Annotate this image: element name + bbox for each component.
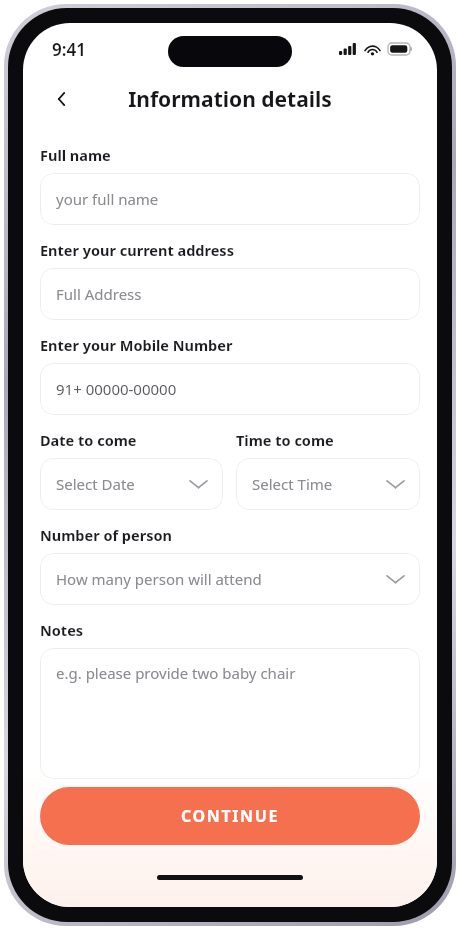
button[interactable]: CONTINUE — [40, 787, 420, 845]
staticText: Full name — [40, 145, 111, 165]
staticText: 91+ 00000-00000 — [56, 379, 404, 399]
button[interactable]: How many person will attend — [40, 553, 420, 605]
button[interactable]: Back — [40, 77, 84, 121]
staticText: Select Date — [56, 474, 190, 494]
button[interactable]: Select Date — [40, 458, 223, 510]
staticText: Enter your Mobile Number — [40, 335, 233, 355]
button[interactable]: e.g. please provide two baby chair — [40, 648, 420, 779]
staticText: 9:41 — [52, 38, 86, 61]
staticText: your full name — [56, 189, 404, 209]
button[interactable]: your full name — [40, 173, 420, 225]
staticText: Time to come — [236, 430, 334, 450]
staticText: Date to come — [40, 430, 137, 450]
button[interactable]: 91+ 00000-00000 — [40, 363, 420, 415]
staticText: Notes — [40, 620, 84, 640]
button[interactable]: Full Address — [40, 268, 420, 320]
staticText: Select Time — [252, 474, 387, 494]
staticText: CONTINUE — [181, 805, 279, 827]
staticText: How many person will attend — [56, 569, 387, 589]
staticText: Information details — [128, 85, 332, 114]
staticText: Number of person — [40, 525, 172, 545]
staticText: e.g. please provide two baby chair — [56, 663, 296, 683]
staticText: Enter your current address — [40, 240, 234, 260]
button[interactable]: Select Time — [236, 458, 420, 510]
staticText: Full Address — [56, 284, 404, 304]
